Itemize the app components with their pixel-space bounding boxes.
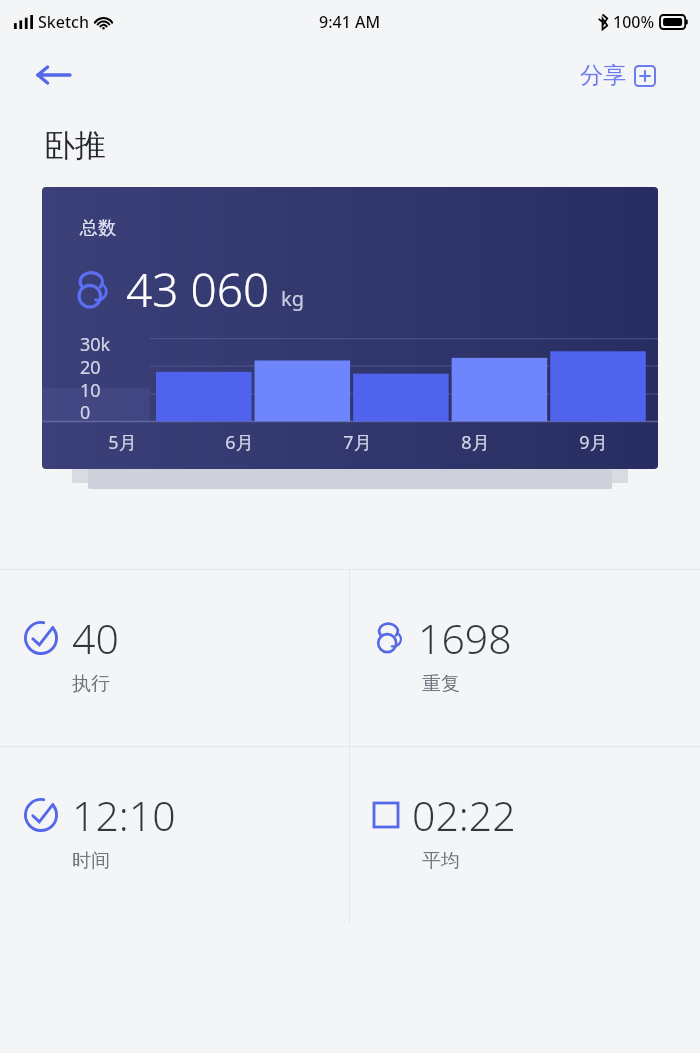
staticText: 0 bbox=[80, 400, 91, 425]
staticText: 10 bbox=[80, 378, 101, 403]
button[interactable]: 分享 bbox=[580, 61, 656, 90]
staticText: 43 060 bbox=[126, 258, 270, 321]
staticText: 40 bbox=[72, 610, 119, 666]
staticText: 时间 bbox=[72, 849, 110, 873]
staticText: 执行 bbox=[72, 672, 110, 696]
staticText: 重复 bbox=[422, 672, 460, 696]
button[interactable]: 12:10 bbox=[0, 747, 349, 923]
staticText: 总数 bbox=[80, 217, 116, 240]
staticText: 平均 bbox=[422, 849, 460, 873]
button[interactable]: 40 bbox=[0, 570, 349, 746]
staticText: 100% bbox=[613, 11, 655, 33]
button[interactable]: 1698 bbox=[350, 570, 700, 746]
staticText: 5月 bbox=[108, 430, 137, 455]
staticText: 9月 bbox=[579, 430, 608, 455]
button[interactable]: 02:22 bbox=[350, 747, 700, 923]
staticText: 1698 bbox=[418, 610, 512, 666]
staticText: 6月 bbox=[225, 430, 254, 455]
staticText: 12:10 bbox=[72, 787, 176, 843]
button[interactable]: Back bbox=[30, 52, 76, 98]
staticText: 8月 bbox=[461, 430, 490, 455]
staticText: Sketch bbox=[38, 11, 89, 33]
staticText: kg bbox=[281, 285, 304, 312]
staticText: 7月 bbox=[343, 430, 372, 455]
staticText: 02:22 bbox=[412, 787, 516, 843]
staticText: 卧推 bbox=[44, 126, 106, 165]
button[interactable]: 总数 bbox=[42, 187, 658, 469]
staticText: 30k bbox=[80, 332, 111, 357]
staticText: 9:41 AM bbox=[319, 11, 381, 33]
staticText: 20 bbox=[80, 355, 101, 380]
staticText: 分享 bbox=[580, 61, 626, 90]
